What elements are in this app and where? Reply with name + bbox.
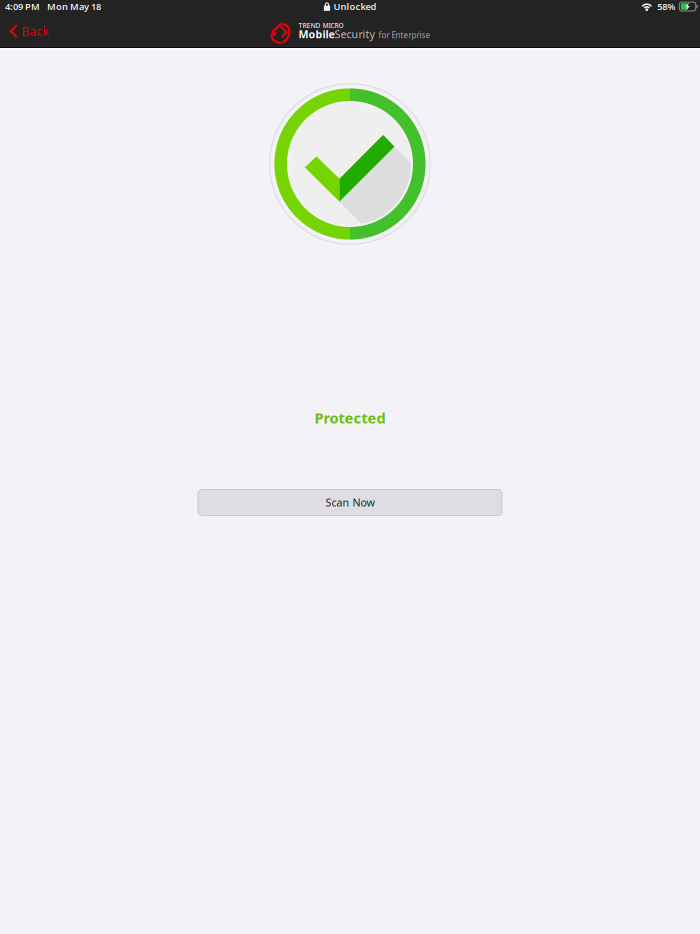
staticText: Security <box>334 27 374 41</box>
button[interactable]: Scan Now <box>198 489 502 515</box>
staticText: Mobile <box>298 27 334 41</box>
staticText: Back <box>21 23 48 39</box>
button[interactable]: Back <box>0 19 56 47</box>
staticText: Protected <box>314 408 385 427</box>
staticText: TREND MICRO <box>298 21 343 30</box>
staticText: 58% <box>657 0 675 13</box>
staticText: for Enterprise <box>374 30 430 40</box>
staticText: 4:09 PM <box>5 0 40 13</box>
staticText: Unlocked <box>333 0 376 13</box>
staticText: Mon May 18 <box>47 0 101 13</box>
staticText: Scan Now <box>325 495 374 510</box>
